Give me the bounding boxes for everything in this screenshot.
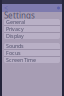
- button[interactable]: Focus: [4, 50, 60, 56]
- staticText: Focus: [6, 49, 21, 57]
- staticText: Privacy: [6, 25, 24, 33]
- button[interactable]: Screen Time: [4, 57, 60, 63]
- staticText: Display: [6, 32, 24, 40]
- staticText: General: [6, 18, 25, 26]
- button[interactable]: Sounds: [4, 43, 60, 49]
- button[interactable]: Privacy: [4, 26, 60, 32]
- staticText: Settings: [4, 10, 35, 21]
- button[interactable]: Display: [4, 33, 60, 39]
- staticText: Sounds: [6, 42, 24, 50]
- staticText: Screen Time: [6, 56, 36, 64]
- button[interactable]: Back: [2, 4, 10, 12]
- staticText: <: [4, 4, 8, 12]
- button[interactable]: General: [4, 19, 60, 25]
- button[interactable]: More: [55, 4, 62, 12]
